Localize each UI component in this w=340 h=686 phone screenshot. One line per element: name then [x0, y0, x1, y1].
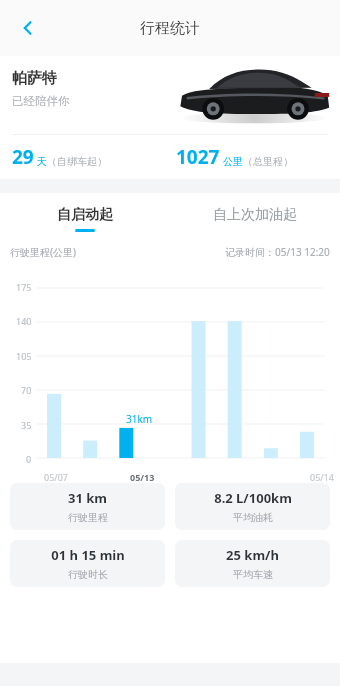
staticText: 天	[37, 155, 47, 168]
staticText: 平均车速	[233, 568, 273, 581]
staticText: 自上次加油起	[213, 206, 297, 224]
staticText: 01 h 15 min	[51, 546, 125, 564]
staticText: 29	[12, 144, 34, 170]
staticText: （自绑车起）	[47, 155, 107, 168]
button[interactable]: 25 km/h	[175, 540, 330, 587]
staticText: 已经陪伴你	[12, 94, 70, 108]
staticText: 05/14	[310, 471, 334, 483]
staticText: 记录时间：05/13 12:20	[225, 245, 330, 259]
staticText: 帕萨特	[12, 69, 57, 88]
button[interactable]: 31 km	[10, 483, 165, 530]
button[interactable]: 01 h 15 min	[10, 540, 165, 587]
staticText: 31 km	[68, 489, 107, 507]
staticText: 行驶时长	[68, 568, 108, 581]
staticText: 70	[21, 384, 32, 396]
staticText: 行程统计	[140, 19, 200, 38]
button[interactable]: 自启动起	[0, 193, 170, 245]
staticText: 31km	[126, 412, 153, 426]
staticText: 平均油耗	[233, 511, 273, 524]
staticText: 25 km/h	[226, 546, 279, 564]
staticText: 行驶里程(公里)	[10, 245, 76, 259]
button[interactable]: Back	[6, 6, 50, 50]
staticText: （总里程）	[243, 155, 293, 168]
staticText: 8.2 L/100km	[214, 489, 292, 507]
staticText: 行驶里程	[68, 511, 108, 524]
staticText: 175	[16, 281, 32, 293]
button[interactable]: 8.2 L/100km	[175, 483, 330, 530]
staticText: 自启动起	[57, 206, 113, 224]
staticText: 05/13	[130, 471, 155, 483]
staticText: 105	[16, 350, 32, 362]
staticText: 1027	[176, 144, 220, 170]
staticText: 05/07	[44, 471, 68, 483]
staticText: 公里	[223, 155, 243, 168]
staticText: 0	[26, 453, 32, 465]
button[interactable]: 自上次加油起	[170, 193, 340, 245]
staticText: 140	[16, 315, 32, 327]
staticText: 35	[21, 419, 32, 431]
